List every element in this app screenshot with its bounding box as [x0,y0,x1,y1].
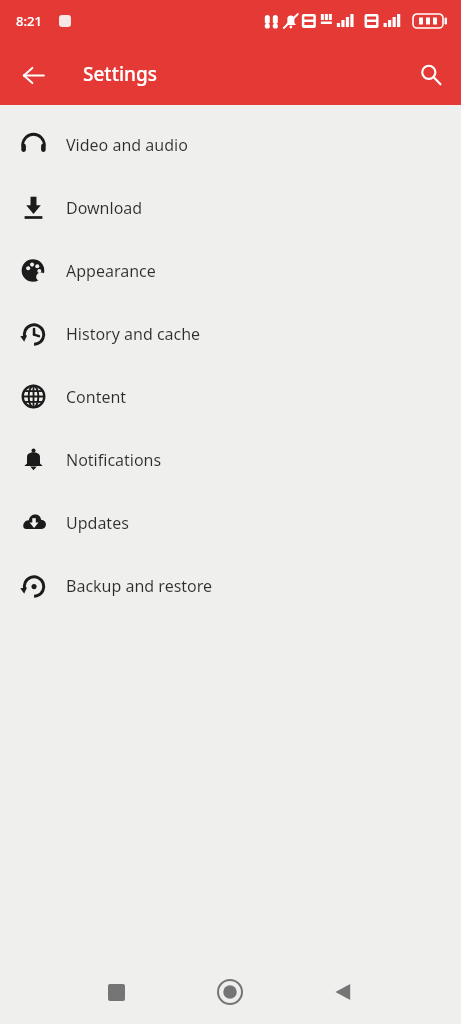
button[interactable]: Recent apps [60,960,173,1024]
button[interactable]: Updates [0,491,461,554]
button[interactable]: Download [0,176,461,239]
button[interactable]: Back [9,51,57,99]
button[interactable]: Appearance [0,239,461,302]
button[interactable]: Search [407,51,455,99]
button[interactable]: Video and audio [0,113,461,176]
button[interactable]: Notifications [0,428,461,491]
staticText: Backup and restore [66,575,213,597]
staticText: Download [66,197,143,219]
staticText: Settings [83,61,157,87]
staticText: 8:21 [16,12,42,30]
staticText: Appearance [66,260,156,282]
staticText: Content [66,386,127,408]
button[interactable]: History and cache [0,302,461,365]
staticText: Updates [66,512,129,534]
staticText: History and cache [66,323,201,345]
button[interactable]: Content [0,365,461,428]
button[interactable]: Backup and restore [0,554,461,617]
button[interactable]: Back [286,960,399,1024]
staticText: Notifications [66,449,162,471]
staticText: Video and audio [66,134,188,156]
button[interactable]: Home [173,960,286,1024]
